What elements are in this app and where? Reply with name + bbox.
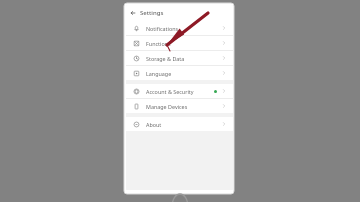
staticText: Functions <box>146 40 221 47</box>
button[interactable]: Storage & Data <box>126 51 233 65</box>
staticText: Storage & Data <box>146 55 221 62</box>
staticText: Notifications <box>146 25 221 32</box>
button[interactable]: Back <box>126 6 140 20</box>
staticText: About <box>146 121 221 128</box>
button[interactable]: About <box>126 117 233 131</box>
staticText: Settings <box>140 9 164 17</box>
staticText: Manage Devices <box>146 103 221 110</box>
button[interactable]: Language <box>126 66 233 80</box>
button[interactable]: Account & Security <box>126 84 233 98</box>
button[interactable]: Manage Devices <box>126 99 233 113</box>
button[interactable]: Functions <box>126 36 233 50</box>
staticText: Account & Security <box>146 88 214 95</box>
button[interactable]: Notifications <box>126 21 233 35</box>
staticText: Language <box>146 70 221 77</box>
